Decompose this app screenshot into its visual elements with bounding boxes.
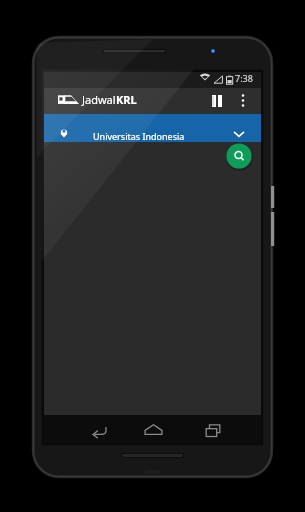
button[interactable]: Home xyxy=(141,420,167,442)
button[interactable]: More options xyxy=(233,90,253,112)
button[interactable]: Search xyxy=(226,143,252,169)
button[interactable]: Map xyxy=(207,90,229,112)
staticText: Universitas Indonesia xyxy=(93,130,185,142)
staticText: 7:38 xyxy=(235,72,253,84)
staticText: Jadwal xyxy=(82,92,116,107)
button[interactable] xyxy=(44,122,261,150)
staticText: KRL xyxy=(116,92,137,107)
button[interactable]: Back xyxy=(86,420,112,442)
button[interactable]: Recent apps xyxy=(200,420,226,442)
